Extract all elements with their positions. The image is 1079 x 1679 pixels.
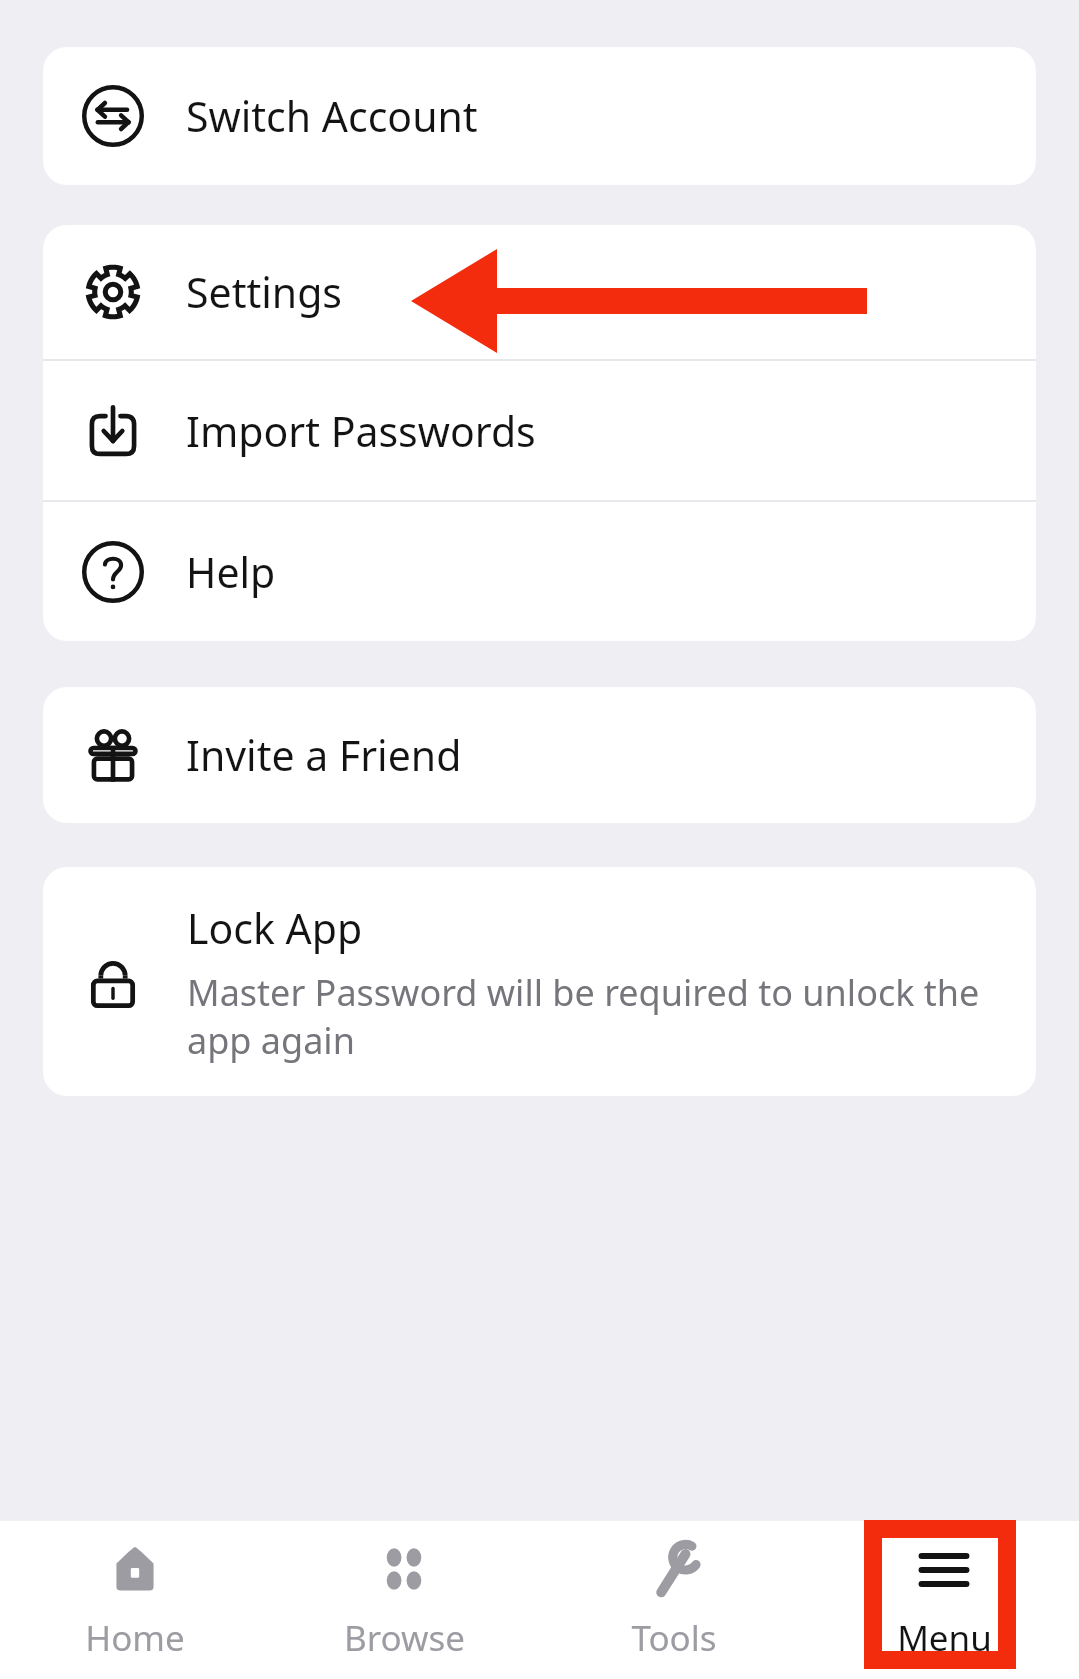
other: Lock App <box>84 953 142 1011</box>
button[interactable]: Switch Account <box>43 47 1036 185</box>
button[interactable]: Invite a Friend <box>43 687 1036 823</box>
staticText: Invite a Friend <box>186 727 462 783</box>
staticText: Menu <box>897 1614 992 1662</box>
button[interactable]: Help <box>43 502 1036 641</box>
button[interactable]: Browse <box>269 1521 539 1679</box>
button[interactable]: Home <box>0 1521 269 1679</box>
other: Menu <box>912 1538 976 1602</box>
staticText: Help <box>186 544 276 600</box>
button[interactable]: Menu <box>809 1521 1079 1679</box>
staticText: Switch Account <box>186 88 478 144</box>
other: Switch Account <box>82 85 144 147</box>
staticText: Tools <box>631 1614 717 1662</box>
staticText: Import Passwords <box>186 403 536 459</box>
other: Browse <box>372 1538 436 1602</box>
other: Tools <box>642 1538 706 1602</box>
button[interactable]: Lock App <box>43 867 1036 1096</box>
staticText: Browse <box>344 1614 465 1662</box>
staticText: Lock App <box>187 900 363 956</box>
other: Settings <box>82 261 144 323</box>
staticText: Home <box>85 1614 185 1662</box>
other: Help <box>82 541 144 603</box>
other: Invite a Friend <box>82 724 144 786</box>
button[interactable]: Settings <box>43 225 1036 359</box>
other: Home <box>103 1538 167 1602</box>
button[interactable]: Import Passwords <box>43 361 1036 500</box>
staticText: Settings <box>186 264 343 320</box>
other: Import Passwords <box>82 400 144 462</box>
staticText: Master Password will be required to unlo… <box>187 968 1012 1064</box>
button[interactable]: Tools <box>539 1521 809 1679</box>
